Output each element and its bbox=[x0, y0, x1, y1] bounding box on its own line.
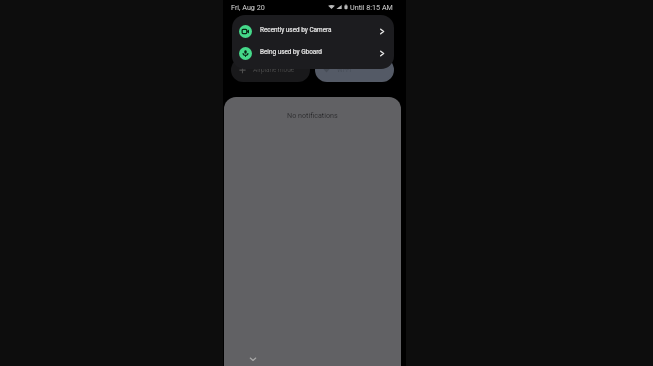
button[interactable]: Recently used by Camera bbox=[232, 20, 394, 42]
staticText: No notifications bbox=[287, 111, 338, 119]
button[interactable]: Wi-Fi bbox=[315, 58, 394, 82]
staticText: Wi-Fi bbox=[337, 66, 352, 74]
button[interactable]: Being used by Gboard bbox=[232, 42, 394, 64]
staticText: Being used by Gboard bbox=[260, 48, 322, 56]
staticText: Until 8:15 AM bbox=[350, 3, 393, 11]
staticText: Airplane mode bbox=[253, 66, 295, 74]
other: Collapse notification shade bbox=[249, 355, 257, 363]
button[interactable]: Airplane mode bbox=[231, 58, 310, 82]
staticText: Fri, Aug 20 bbox=[231, 3, 265, 11]
staticText: Recently used by Camera bbox=[260, 26, 332, 34]
